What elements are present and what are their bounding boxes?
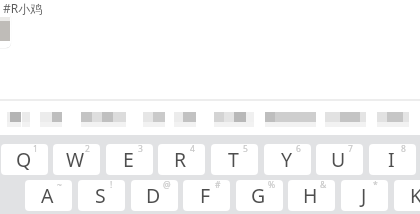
button[interactable]: D [131,180,178,211]
staticText: 1 [33,144,38,155]
staticText: 7 [348,144,353,155]
staticText: D [146,182,161,209]
button[interactable] [174,101,197,133]
staticText: % [268,180,276,191]
button[interactable] [7,101,30,133]
staticText: ~ [57,180,62,191]
staticText: R [174,146,187,173]
staticText: E [123,146,134,173]
staticText: #R小鸡 [3,0,43,16]
staticText: 6 [296,144,301,155]
staticText: K [410,182,420,209]
button[interactable]: E [106,144,153,175]
button[interactable] [377,101,409,133]
button[interactable]: A [25,180,72,211]
staticText: @ [163,180,171,191]
staticText: I [388,146,395,173]
button[interactable]: F [183,180,230,211]
button[interactable]: I [369,144,416,175]
button[interactable] [214,101,254,133]
staticText: Q [16,146,32,173]
button[interactable]: T [211,144,258,175]
button[interactable] [81,101,126,133]
button[interactable]: G [236,180,283,211]
staticText: H [303,182,318,209]
button[interactable]: Y [264,144,311,175]
button[interactable] [40,101,62,133]
button[interactable]: R [158,144,205,175]
staticText: W [66,146,85,173]
staticText: ! [110,180,113,191]
staticText: # [215,180,221,191]
staticText: 8 [401,144,406,155]
button[interactable] [265,101,316,133]
button[interactable]: W [53,144,100,175]
staticText: Y [281,146,293,173]
staticText: 4 [190,144,195,155]
staticText: S [95,182,106,209]
button[interactable]: Photo message [0,13,11,48]
button[interactable]: H [288,180,335,211]
staticText: J [361,182,367,209]
staticText: 3 [138,144,143,155]
staticText: 5 [243,144,248,155]
staticText: G [251,182,266,209]
staticText: 2 [85,144,90,155]
staticText: & [320,180,327,191]
button[interactable]: K [394,180,420,211]
staticText: * [373,180,378,191]
staticText: U [331,146,346,173]
button[interactable] [325,101,366,133]
staticText: A [41,182,54,209]
button[interactable] [143,101,164,133]
button[interactable]: J [341,180,388,211]
staticText: T [228,146,239,173]
staticText: F [200,182,211,209]
button[interactable]: S [78,180,125,211]
button[interactable]: U [316,144,363,175]
button[interactable]: Q [1,144,48,175]
